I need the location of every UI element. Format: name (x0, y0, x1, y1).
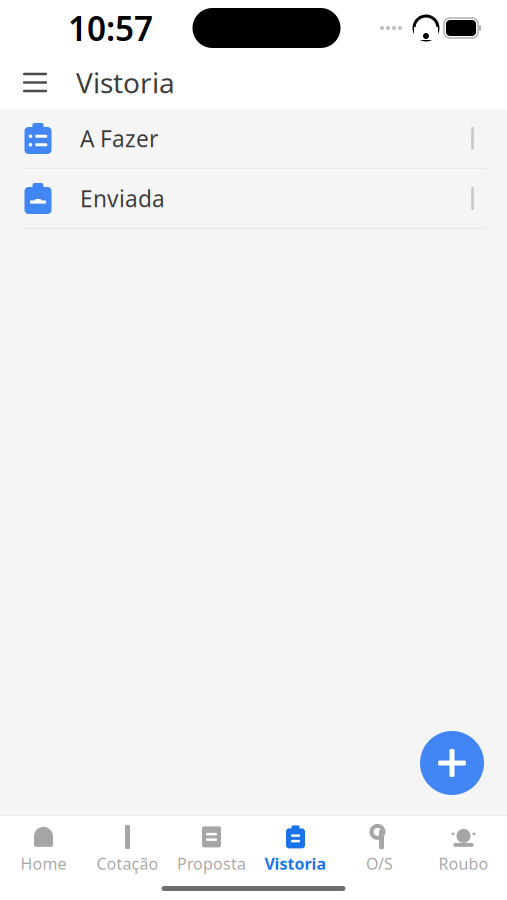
button[interactable]: O/S (337, 826, 421, 874)
button[interactable]: Cotação (85, 826, 169, 874)
staticText: O/S (366, 853, 393, 874)
button[interactable]: Menu (12, 60, 58, 104)
staticText: Vistoria (76, 64, 175, 101)
staticText: Home (20, 853, 66, 874)
staticText: 10:57 (68, 6, 153, 50)
staticText: Vistoria (264, 853, 326, 874)
staticText: Enviada (80, 183, 165, 213)
button[interactable]: Proposta (169, 826, 253, 874)
button[interactable]: Roubo (421, 826, 505, 874)
staticText: Roubo (438, 853, 488, 874)
button[interactable]: Enviada (0, 169, 507, 228)
button[interactable]: Home (1, 826, 85, 874)
button[interactable]: A Fazer (0, 109, 507, 168)
staticText: A Fazer (80, 123, 158, 153)
button[interactable]: Adicionar (420, 731, 484, 795)
staticText: Proposta (177, 853, 246, 874)
button[interactable]: Vistoria (253, 826, 337, 874)
staticText: Cotação (96, 853, 158, 874)
